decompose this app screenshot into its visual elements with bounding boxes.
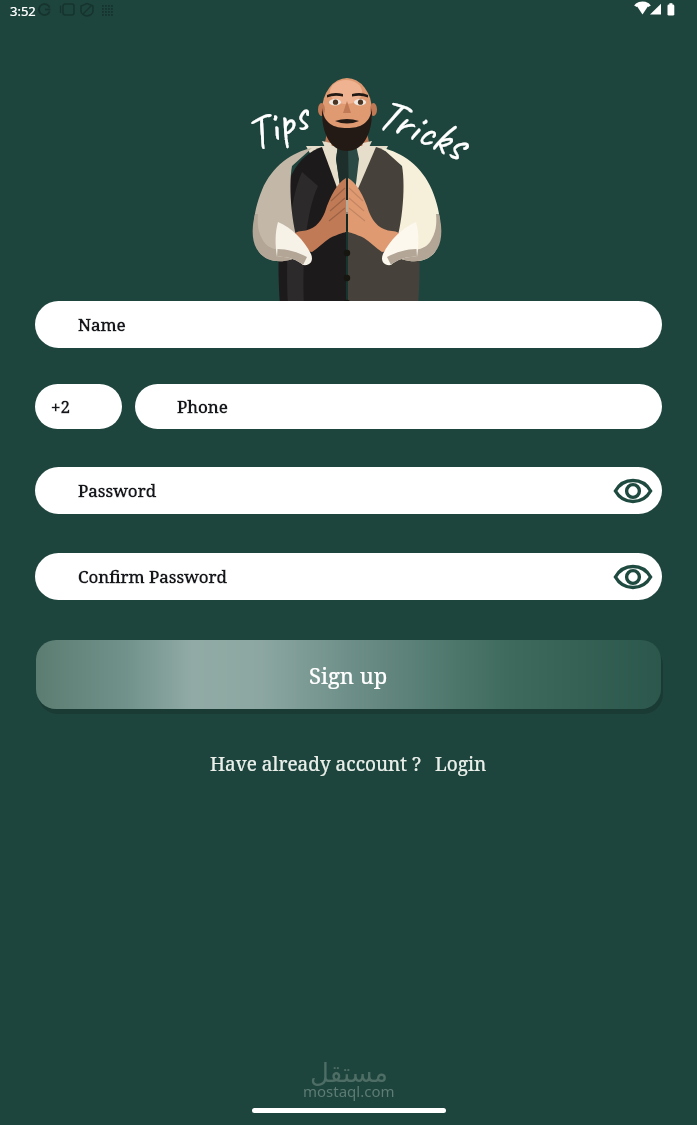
staticText: Tips [237,86,317,164]
button[interactable]: Show password [611,472,655,510]
staticText: Confirm Password [78,565,228,588]
button[interactable]: Phone [135,384,662,429]
staticText: Have already account ? [210,751,421,777]
button[interactable]: Password [35,467,662,514]
staticText: مستقل [310,1058,388,1088]
button[interactable]: Login [435,751,487,777]
staticText: Name [78,313,126,336]
button[interactable]: Show password [611,558,655,596]
staticText: +2 [51,395,71,418]
button[interactable]: Confirm Password [35,553,662,600]
staticText: Login [435,751,487,777]
staticText: Password [78,479,157,502]
button[interactable]: +2 [35,384,122,429]
staticText: Sign up [309,660,388,690]
staticText: mostaql.com [303,1081,395,1101]
button[interactable]: Name [35,301,662,348]
staticText: Phone [177,395,228,418]
staticText: 3:52 [10,2,36,20]
staticText: Tricks [369,84,477,174]
button[interactable]: Sign up [36,640,661,709]
